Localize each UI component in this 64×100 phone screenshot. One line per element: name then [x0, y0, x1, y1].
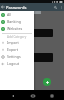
button[interactable]: Websites: [0, 25, 34, 32]
staticText: Websites: [7, 26, 23, 31]
button[interactable]: Export: [0, 46, 34, 53]
button[interactable]: Banking: [0, 18, 34, 25]
staticText: Banking: [7, 19, 21, 24]
staticText: Import: [7, 40, 19, 45]
staticText: Passwords: [6, 5, 27, 10]
button[interactable]: Home: [30, 93, 35, 98]
staticText: Add Category: [7, 35, 27, 39]
button[interactable]: Back: [0, 3, 6, 11]
staticText: Logout: [7, 61, 19, 66]
button[interactable]: Import: [0, 39, 34, 46]
staticText: Export: [7, 47, 19, 52]
button[interactable]: Settings: [0, 53, 34, 60]
button[interactable]: More options: [59, 3, 64, 11]
button[interactable]: Recent apps: [49, 93, 54, 98]
button[interactable]: [2, 53, 53, 62]
button[interactable]: All: [0, 11, 34, 18]
button[interactable]: [2, 29, 53, 37]
staticText: Settings: [7, 54, 21, 59]
button[interactable]: Add Category: [0, 34, 34, 39]
button[interactable]: Add password: [43, 78, 51, 86]
staticText: All: [7, 12, 12, 17]
button[interactable]: Search: [52, 3, 59, 11]
button[interactable]: Logout: [0, 60, 34, 67]
button[interactable]: Back: [10, 93, 15, 98]
